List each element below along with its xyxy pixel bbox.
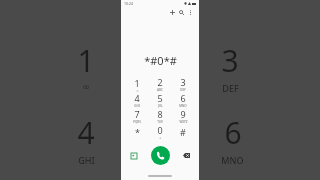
staticText: ∞ [82,82,90,92]
staticText: 3 [180,76,186,88]
button[interactable]: More options [186,8,195,17]
button[interactable]: Backspace [180,149,193,162]
staticText: JKL [158,104,163,108]
button[interactable]: Call [151,146,170,165]
staticText: WXYZ [179,120,188,124]
button[interactable]: Add to contacts [127,149,140,162]
button[interactable]: 6 [173,92,193,108]
staticText: PQRS [133,120,141,124]
button[interactable]: 2 [150,76,170,92]
staticText: 6 [224,112,242,153]
staticText: 5 [157,92,163,104]
button[interactable]: 0 [150,124,170,140]
staticText: 8 [157,108,163,120]
staticText: 9 [180,108,186,120]
staticText: 4 [134,92,140,104]
button[interactable]: 5 [150,92,170,108]
staticText: ∞ [136,89,139,92]
button[interactable]: 9 [173,108,193,124]
button[interactable]: 8 [150,108,170,124]
button[interactable]: 4 [127,92,147,108]
staticText: 10:24 [124,1,133,6]
button[interactable]: Add contact [168,8,177,17]
staticText: MNO [179,104,187,108]
staticText: + [159,136,161,140]
staticText: GHI [78,154,95,166]
staticText: ABC [157,88,163,92]
staticText: 3 [221,40,239,81]
staticText: 1 [134,77,140,89]
button[interactable]: 7 [127,108,147,124]
staticText: DEF [222,82,239,94]
staticText: GHI [134,104,140,108]
button[interactable]: Search [177,8,186,17]
button[interactable]: 3 [173,76,193,92]
staticText: # [180,126,186,138]
staticText: * [135,126,140,138]
staticText: *#0*# [144,53,177,68]
staticText: DEF [180,88,186,92]
button[interactable]: 1 [127,76,147,92]
staticText: TUV [157,120,163,124]
staticText: 1 [77,40,95,81]
button[interactable]: # [173,124,193,140]
staticText: 7 [134,108,140,120]
button[interactable]: * [127,124,147,140]
staticText: 0 [157,124,163,136]
staticText: 4 [77,112,95,153]
staticText: 6 [180,92,186,104]
staticText: 2 [157,76,163,88]
staticText: MNO [221,154,244,166]
